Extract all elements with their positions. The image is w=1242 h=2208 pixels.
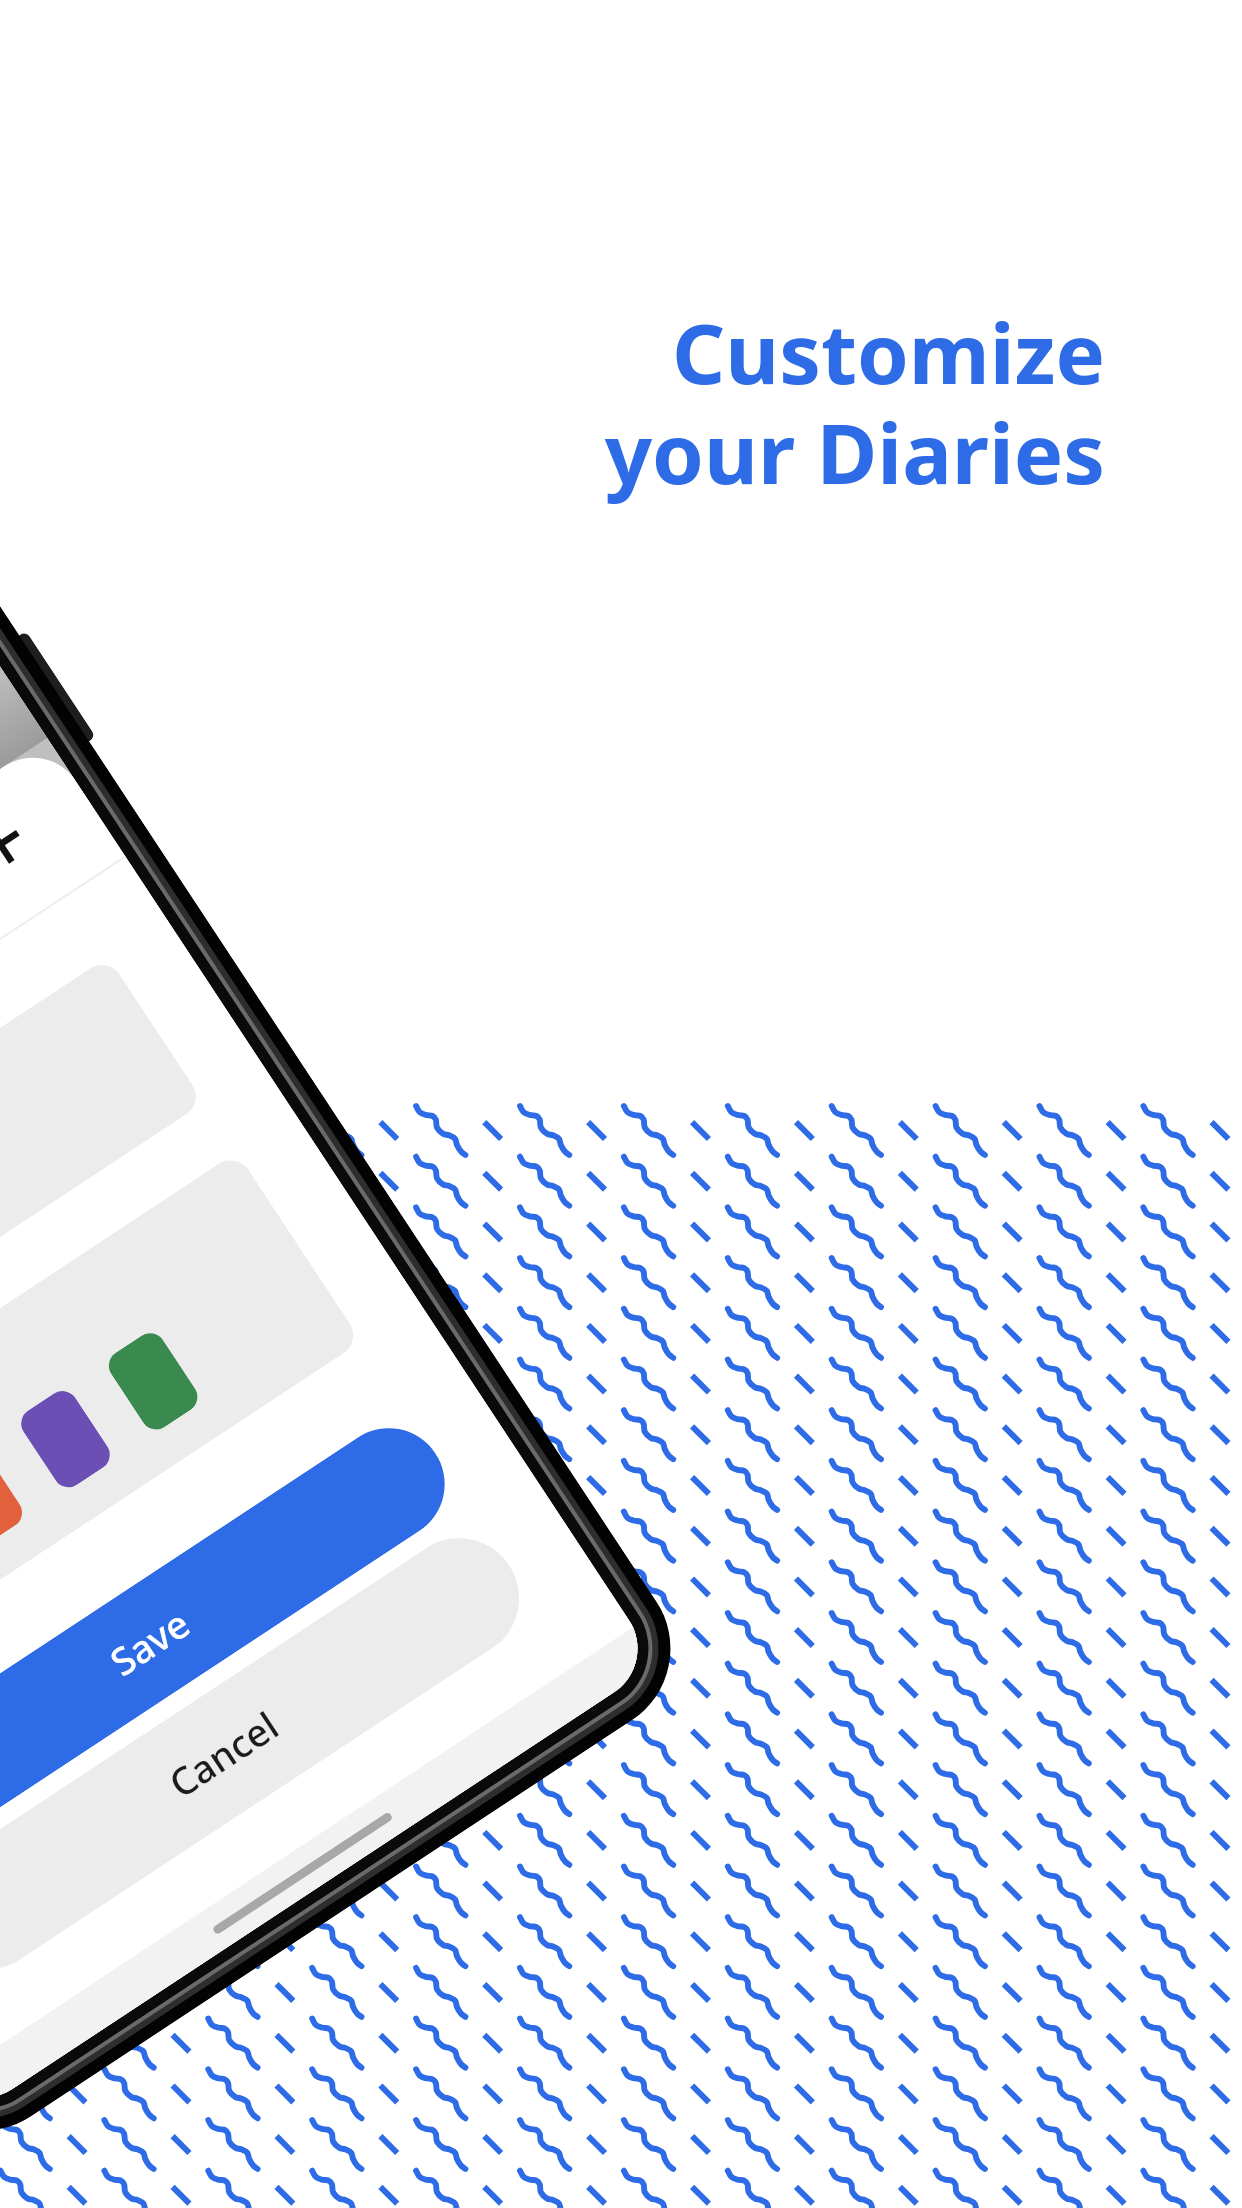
button[interactable]: Add	[0, 768, 76, 920]
button[interactable]: Save	[0, 1407, 466, 1877]
staticText: Customize your Diaries	[490, 295, 1105, 509]
button[interactable]: Colour swatch	[103, 1327, 204, 1435]
button[interactable]: Colour swatch	[15, 1385, 116, 1493]
button[interactable]: Colour swatch	[0, 1443, 28, 1551]
button[interactable]: Colour swatch	[0, 1152, 362, 1719]
staticText: Cancel	[158, 1699, 288, 1809]
staticText: Save	[100, 1597, 199, 1687]
button[interactable]	[0, 957, 204, 1480]
button[interactable]: Cancel	[0, 1515, 542, 1992]
